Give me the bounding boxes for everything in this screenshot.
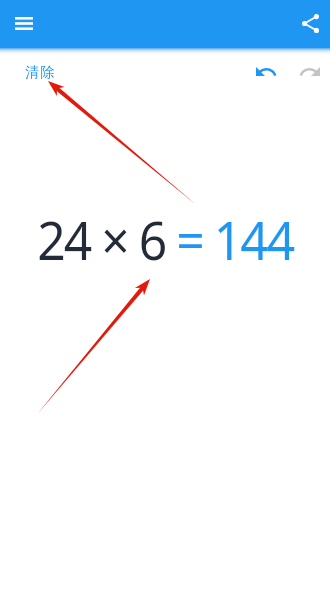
button[interactable]: Undo [250, 58, 281, 84]
staticText: 清除 [25, 64, 56, 82]
button[interactable]: Share [294, 7, 326, 39]
button[interactable]: Redo [294, 58, 325, 84]
button[interactable]: 清除 [25, 64, 56, 82]
staticText: 24 × 6 [37, 203, 176, 275]
button[interactable]: Menu [8, 7, 40, 39]
staticText: = 144 [176, 203, 294, 275]
